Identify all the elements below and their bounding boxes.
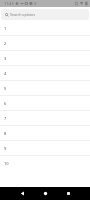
staticText: 5 — [4, 86, 7, 91]
staticText: 4 — [4, 71, 7, 76]
button[interactable]: Home — [30, 187, 60, 200]
button[interactable]: 10 — [0, 155, 90, 170]
button[interactable]: 7 — [0, 110, 90, 125]
staticText: 3 — [4, 56, 7, 61]
staticText: 10 — [4, 161, 9, 166]
button[interactable]: 6 — [0, 95, 90, 110]
button[interactable]: 4 — [0, 65, 90, 80]
button[interactable]: 2 — [0, 35, 90, 50]
button[interactable]: Search options — [1, 9, 89, 20]
button[interactable]: Recents — [53, 187, 83, 200]
button[interactable]: 9 — [0, 140, 90, 155]
staticText: 8 — [4, 131, 7, 136]
button[interactable]: 5 — [0, 80, 90, 95]
staticText: 1 — [4, 26, 7, 31]
button[interactable]: Back — [7, 187, 37, 200]
staticText: 6 — [4, 101, 7, 106]
staticText: 9 — [4, 146, 7, 151]
button[interactable]: 3 — [0, 50, 90, 65]
staticText: 11:43 — [4, 1, 14, 6]
button[interactable]: 8 — [0, 125, 90, 140]
staticText: 2 — [4, 41, 7, 46]
staticText: Search options — [10, 12, 36, 17]
staticText: 7 — [4, 116, 7, 121]
